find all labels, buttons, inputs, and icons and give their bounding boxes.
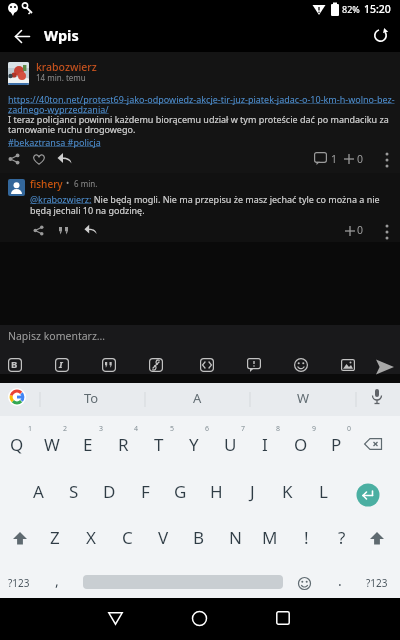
staticText: 1 [28, 424, 33, 434]
staticText: , [55, 571, 59, 590]
button[interactable]: A [167, 389, 227, 407]
button[interactable]: J [235, 472, 269, 510]
button[interactable]: ? [325, 518, 359, 556]
button[interactable] [12, 531, 28, 545]
button[interactable]: M [253, 518, 287, 556]
button[interactable]: W [35, 425, 69, 463]
button[interactable] [8, 23, 36, 49]
staticText: I [59, 358, 63, 371]
button[interactable]: R [106, 425, 140, 463]
button[interactable]: . [323, 561, 357, 599]
button[interactable] [384, 224, 390, 240]
staticText: 15:20 [364, 2, 391, 16]
button[interactable]: , [40, 561, 74, 599]
button[interactable]: ?123 [360, 564, 394, 602]
button[interactable]: H [199, 472, 233, 510]
button[interactable] [373, 355, 397, 379]
staticText: 6 [205, 424, 210, 434]
button[interactable] [33, 225, 44, 236]
button[interactable] [369, 531, 385, 545]
button[interactable] [33, 154, 45, 165]
button[interactable] [345, 226, 355, 236]
button[interactable] [101, 604, 129, 632]
staticText: W [44, 433, 60, 456]
button[interactable]: B [182, 518, 216, 556]
button[interactable] [149, 358, 163, 372]
button[interactable] [350, 477, 386, 513]
staticText: fishery [30, 177, 63, 191]
button[interactable] [57, 152, 72, 164]
staticText: A [193, 389, 202, 407]
staticText: #bekaztransa #policja [8, 136, 101, 148]
button[interactable]: W [273, 389, 333, 407]
staticText: https://40ton.net/protest69-jako-odpowie… [8, 93, 395, 105]
button[interactable] [0, 173, 400, 242]
staticText: 3 [99, 424, 104, 434]
button[interactable] [366, 22, 394, 48]
button[interactable] [200, 358, 214, 372]
staticText: J [250, 480, 255, 503]
button[interactable] [344, 154, 354, 164]
button[interactable]: K [270, 472, 304, 510]
button[interactable] [0, 52, 400, 173]
staticText: 1 [331, 152, 338, 166]
button[interactable] [354, 425, 392, 463]
button[interactable]: S [57, 472, 91, 510]
staticText: T [154, 433, 164, 456]
button[interactable] [269, 604, 297, 632]
button[interactable] [247, 358, 261, 372]
button[interactable] [341, 358, 355, 372]
staticText: P [331, 433, 342, 456]
button[interactable] [185, 604, 213, 632]
button[interactable]: Z [38, 518, 72, 556]
button[interactable] [314, 152, 327, 165]
staticText: 0 [357, 223, 364, 237]
button[interactable]: E [71, 425, 105, 463]
staticText: będą jechali 10 na godzinę. [30, 204, 145, 216]
staticText: F [141, 480, 150, 503]
staticText: Q [10, 433, 24, 456]
staticText: H [210, 480, 223, 503]
button[interactable]: To [61, 389, 121, 407]
button[interactable] [59, 227, 70, 235]
button[interactable]: I [248, 425, 282, 463]
staticText: @krabozwierz: Nie będą mogli. Nie ma prz… [30, 193, 380, 205]
button[interactable]: U [213, 425, 247, 463]
button[interactable]: N [218, 518, 252, 556]
button[interactable] [84, 224, 97, 234]
button[interactable] [8, 153, 20, 165]
button[interactable]: O [284, 425, 318, 463]
staticText: • [66, 177, 70, 189]
button[interactable]: F [128, 472, 162, 510]
staticText: X [86, 526, 96, 549]
button[interactable]: X [74, 518, 108, 556]
button[interactable]: C [110, 518, 144, 556]
staticText: O [294, 433, 308, 456]
staticText: ?123 [8, 576, 30, 590]
button[interactable]: ! [289, 518, 323, 556]
staticText: 4 [134, 424, 139, 434]
button[interactable] [55, 358, 69, 372]
staticText: S [69, 480, 79, 503]
button[interactable]: V [146, 518, 180, 556]
button[interactable]: G [163, 472, 197, 510]
button[interactable] [102, 358, 116, 372]
staticText: ? [338, 526, 346, 549]
button[interactable]: L [306, 472, 340, 510]
button[interactable] [384, 152, 390, 168]
button[interactable] [294, 358, 308, 372]
button[interactable]: D [92, 472, 126, 510]
button[interactable] [0, 325, 400, 374]
button[interactable]: ?123 [2, 564, 36, 602]
staticText: N [229, 526, 242, 549]
staticText: G [174, 480, 187, 503]
button[interactable]: P [319, 425, 353, 463]
button[interactable]: Q [0, 425, 34, 463]
button[interactable]: T [142, 425, 176, 463]
button[interactable]: Y [177, 425, 211, 463]
button[interactable]: A [21, 472, 55, 510]
button[interactable] [8, 358, 22, 372]
staticText: V [158, 526, 169, 549]
staticText: E [83, 433, 93, 456]
